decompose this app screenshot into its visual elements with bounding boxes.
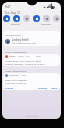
staticText: Silent notifications: [5, 50, 27, 53]
button[interactable]: Gmail: [3, 54, 60, 66]
staticText: 9:41: [5, 5, 11, 9]
staticText: Bluetooth: [11, 23, 21, 26]
staticText: Conversations: [5, 33, 22, 36]
staticText: Lindsey Smith: [12, 38, 29, 41]
staticText: · Inbox · 2m: [17, 55, 30, 58]
staticText: Coffee Shop Your order is ready: [5, 59, 42, 62]
staticText: Silent notifications: [5, 69, 27, 72]
button[interactable]: Quick setting: [51, 15, 61, 23]
staticText: Gmail: [9, 55, 16, 58]
staticText: Tue, Aug 13: [5, 11, 20, 15]
button[interactable]: Quick setting: [41, 15, 51, 26]
button[interactable]: Quick setting: [21, 15, 31, 23]
button[interactable]: Conversations: [3, 31, 60, 46]
staticText: now: [36, 55, 41, 58]
staticText: · 10m: [20, 74, 26, 77]
staticText: Flashlight: [41, 23, 51, 26]
staticText: Grocery delivery Arriving in 20 min: [5, 62, 45, 65]
button[interactable]: Remove: [38, 86, 48, 89]
button[interactable]: Quick setting: [11, 15, 21, 26]
button[interactable]: Snooze: [5, 86, 14, 89]
staticText: Thursday 10:00 AM: [5, 81, 27, 84]
button[interactable]: Notification shade: [2, 2, 61, 119]
staticText: Let's meet at the cafe: [12, 41, 36, 44]
staticText: Team Sync Meeting: [5, 78, 27, 81]
button[interactable]: Open: [51, 86, 58, 89]
staticText: Calendar: [9, 74, 19, 77]
button[interactable]: Quick setting: [31, 15, 41, 23]
button[interactable]: Calendar: [3, 73, 60, 90]
button[interactable]: Quick setting: [2, 15, 11, 23]
